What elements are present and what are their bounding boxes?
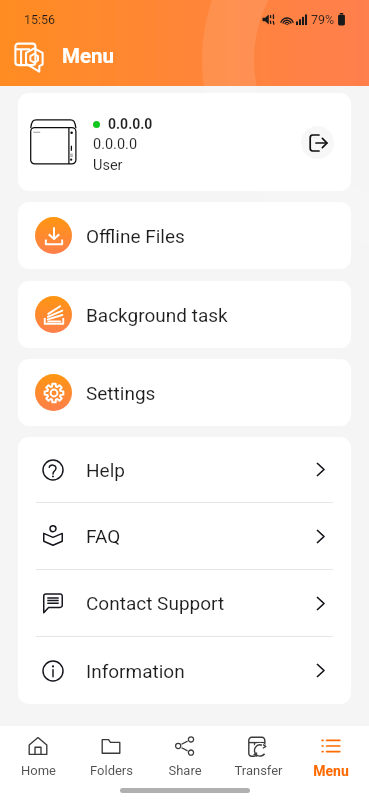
staticText: User xyxy=(93,157,123,174)
staticText: Folders xyxy=(90,763,133,776)
button[interactable]: FAQ xyxy=(18,503,351,569)
staticText: Settings xyxy=(86,382,156,404)
staticText: Menu xyxy=(62,44,114,68)
staticText: 0.0.0.0 xyxy=(108,116,153,132)
staticText: Background task xyxy=(86,304,228,326)
button[interactable]: Settings xyxy=(18,359,351,426)
staticText: Information xyxy=(86,660,185,682)
staticText: FAQ xyxy=(86,525,121,547)
button[interactable]: Background task xyxy=(18,281,351,348)
staticText: 15:56 xyxy=(24,12,56,27)
staticText: Contact Support xyxy=(86,592,225,614)
button[interactable]: Menu xyxy=(296,726,366,780)
button[interactable]: 0.0.0.0 xyxy=(18,93,351,191)
button[interactable]: Offline Files xyxy=(18,202,351,269)
staticText: 79% xyxy=(311,12,335,27)
button[interactable]: Folders xyxy=(76,726,146,780)
staticText: Share xyxy=(168,763,202,776)
button[interactable]: Information xyxy=(18,637,351,704)
staticText: Transfer xyxy=(234,763,283,776)
button[interactable]: Log out xyxy=(301,126,334,159)
button[interactable]: Home xyxy=(3,726,73,780)
staticText: Menu xyxy=(313,763,349,776)
staticText: 0.0.0.0 xyxy=(93,136,138,153)
staticText: Offline Files xyxy=(86,225,185,247)
button[interactable]: Share xyxy=(150,726,220,780)
button[interactable]: Help xyxy=(18,437,351,502)
staticText: Help xyxy=(86,459,125,481)
staticText: Home xyxy=(21,763,56,776)
button[interactable]: Contact Support xyxy=(18,570,351,636)
button[interactable]: Transfer xyxy=(223,726,293,780)
